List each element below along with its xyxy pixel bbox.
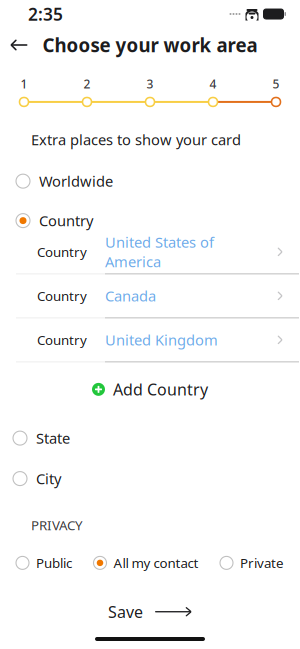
staticText: Add Country	[113, 379, 208, 400]
button[interactable]: All my contact	[93, 554, 198, 572]
staticText: Country	[37, 287, 87, 305]
staticText: Save	[108, 601, 143, 622]
staticText: 3	[146, 76, 153, 92]
staticText: Public	[36, 554, 72, 572]
button[interactable]: Country	[0, 318, 300, 361]
staticText: 5	[272, 76, 279, 92]
staticText: 4	[209, 76, 216, 92]
staticText: 1	[20, 76, 27, 92]
staticText: Choose your work area	[42, 33, 257, 57]
staticText: 2	[83, 76, 90, 92]
staticText: 2:35	[28, 2, 63, 25]
button[interactable]: State	[0, 428, 300, 448]
button[interactable]: Worldwide	[0, 171, 300, 191]
staticText: Country	[37, 331, 87, 349]
staticText: PRIVACY	[31, 516, 83, 534]
staticText: Extra places to show your card	[31, 130, 241, 149]
button[interactable]: Add Country	[0, 374, 300, 404]
button[interactable]: Back	[0, 28, 38, 62]
staticText: Private	[240, 554, 284, 572]
button[interactable]: Private	[220, 554, 284, 572]
button[interactable]: Country	[0, 211, 300, 230]
staticText: All my contact	[113, 554, 198, 572]
staticText: City	[36, 469, 61, 488]
button[interactable]: Country	[0, 230, 300, 273]
button[interactable]: Save	[0, 598, 300, 626]
staticText: Worldwide	[39, 171, 113, 191]
staticText: United States of America	[105, 232, 214, 271]
button[interactable]: City	[0, 469, 300, 488]
button[interactable]: Country	[0, 274, 300, 317]
staticText: Country	[39, 211, 93, 230]
button[interactable]: Public	[16, 554, 72, 572]
staticText: Country	[37, 243, 87, 261]
staticText: State	[36, 428, 70, 448]
staticText: Canada	[105, 286, 156, 306]
staticText: United Kingdom	[105, 330, 218, 350]
